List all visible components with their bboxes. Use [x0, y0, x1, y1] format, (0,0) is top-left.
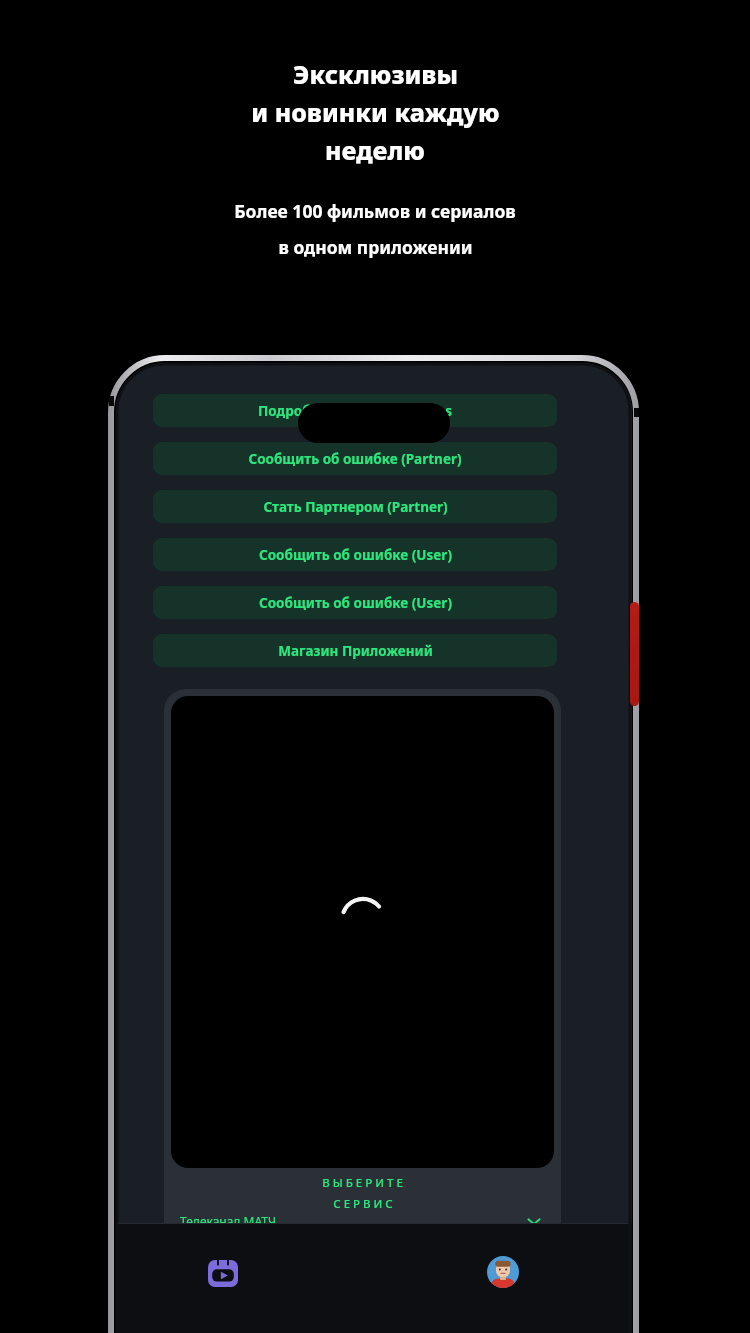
other: Развернуть список: [523, 1210, 545, 1232]
staticText: в одном приложении: [278, 235, 473, 259]
button[interactable]: В Ы Б Е Р И Т Е: [164, 689, 561, 1255]
staticText: неделю: [325, 133, 425, 167]
staticText: и новинки каждую: [251, 95, 500, 129]
staticText: В Ы Б Е Р И Т Е: [322, 1175, 403, 1191]
staticText: Эксклюзивы: [293, 57, 458, 91]
button[interactable]: Подробнее о Oink Platforms: [153, 394, 557, 427]
staticText: Стать Партнером (Partner): [263, 498, 448, 516]
button[interactable]: Сообщить об ошибке (Partner): [153, 442, 557, 475]
button[interactable]: Магазин Приложений: [153, 634, 557, 667]
button[interactable]: Стать Партнером (Partner): [153, 490, 557, 523]
staticText: Сообщить об ошибке (Partner): [248, 450, 462, 468]
button[interactable]: Телеканал МАТЧ: [180, 1210, 545, 1232]
staticText: Подробнее о Oink Platforms: [258, 402, 452, 420]
button[interactable]: Сообщить об ошибке (User): [153, 586, 557, 619]
button[interactable]: Медиа: [200, 1249, 246, 1295]
button[interactable]: Сообщить об ошибке (User): [153, 538, 557, 571]
staticText: Сообщить об ошибке (User): [259, 594, 452, 612]
staticText: Магазин Приложений: [278, 642, 433, 660]
staticText: Более 100 фильмов и сериалов: [234, 199, 516, 223]
staticText: Сообщить об ошибке (User): [259, 546, 452, 564]
staticText: С Е Р В И С: [333, 1196, 393, 1212]
staticText: Телеканал МАТЧ: [180, 1213, 276, 1229]
button[interactable]: Профиль: [480, 1249, 526, 1295]
